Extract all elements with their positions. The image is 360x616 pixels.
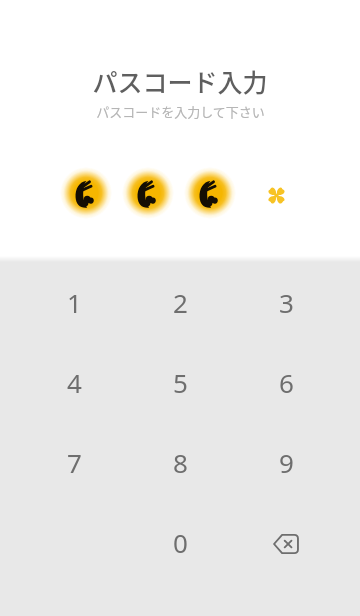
staticText: 9 bbox=[279, 445, 294, 480]
button[interactable]: Backspace bbox=[233, 502, 339, 582]
button[interactable]: 5 bbox=[127, 342, 233, 422]
button[interactable]: 8 bbox=[127, 422, 233, 502]
staticText: 7 bbox=[67, 445, 82, 480]
button[interactable]: 9 bbox=[233, 422, 339, 502]
button[interactable]: 6 bbox=[233, 342, 339, 422]
button[interactable] bbox=[122, 167, 174, 219]
button[interactable]: 2 bbox=[127, 262, 233, 342]
button[interactable]: 4 bbox=[21, 342, 127, 422]
button[interactable]: 7 bbox=[21, 422, 127, 502]
staticText: 6 bbox=[279, 365, 294, 400]
button[interactable] bbox=[60, 167, 112, 219]
button[interactable] bbox=[184, 167, 236, 219]
staticText: パスコード入力 bbox=[92, 63, 268, 99]
staticText: パスコードを入力して下さい bbox=[96, 102, 265, 121]
button[interactable]: 1 bbox=[21, 262, 127, 342]
staticText: 5 bbox=[173, 365, 188, 400]
button[interactable]: 0 bbox=[127, 502, 233, 582]
staticText: 8 bbox=[173, 445, 188, 480]
staticText: 2 bbox=[173, 285, 188, 320]
staticText: 1 bbox=[67, 285, 82, 320]
staticText: 0 bbox=[173, 525, 188, 560]
staticText: 4 bbox=[67, 365, 82, 400]
button[interactable]: 3 bbox=[233, 262, 339, 342]
staticText: 3 bbox=[279, 285, 294, 320]
